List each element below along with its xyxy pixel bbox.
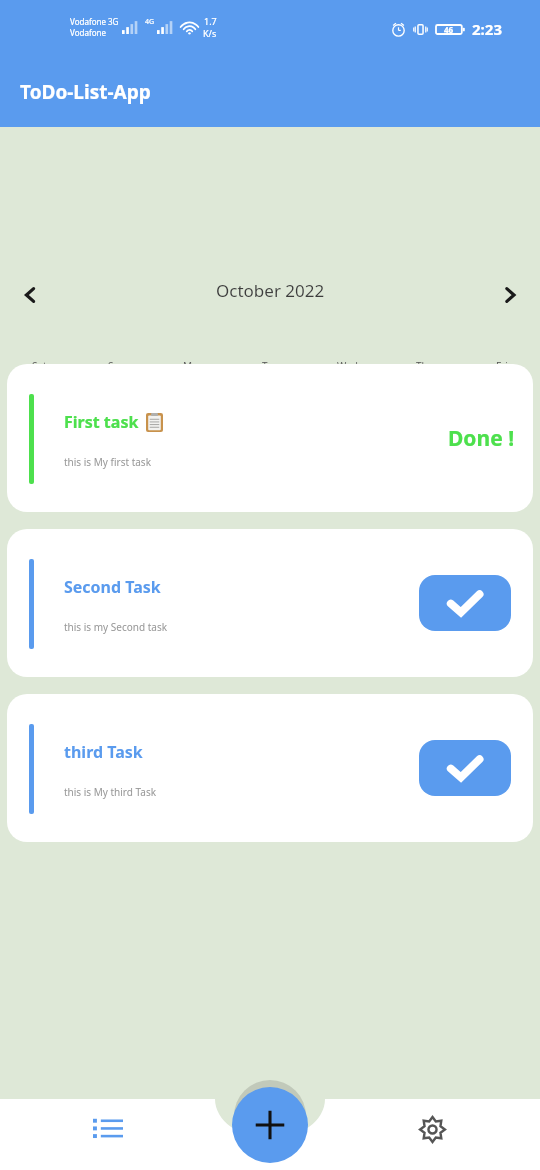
staticText: Tue xyxy=(262,359,279,373)
button[interactable]: Mark task done xyxy=(419,575,511,631)
button[interactable]: 30 xyxy=(78,409,155,481)
button[interactable]: Mark task done xyxy=(419,740,511,796)
button[interactable]: 31 xyxy=(155,409,232,481)
staticText: this is My first task xyxy=(64,455,151,469)
staticText: 2:23 xyxy=(472,19,502,39)
staticText: Done ! xyxy=(448,424,515,453)
button[interactable]: 4 xyxy=(463,409,540,481)
staticText: Thu xyxy=(416,359,434,373)
staticText: Vodafone xyxy=(70,27,106,38)
staticText: Second Task xyxy=(64,576,161,598)
staticText: Fri xyxy=(496,359,508,373)
staticText: 29 xyxy=(31,436,48,455)
staticText: third Task xyxy=(64,741,143,763)
button[interactable]: 29 xyxy=(0,409,78,481)
button[interactable]: Second Task xyxy=(7,529,533,677)
button[interactable]: First task xyxy=(7,364,533,512)
button[interactable]: 3 xyxy=(386,409,463,481)
button[interactable]: Next month xyxy=(490,275,530,315)
staticText: this is my Second task xyxy=(64,620,168,634)
button[interactable]: Settings xyxy=(325,1099,540,1159)
staticText: October 2022 xyxy=(216,279,325,302)
staticText: K/s xyxy=(203,27,217,39)
button[interactable]: Previous month xyxy=(10,275,50,315)
staticText: 46 xyxy=(444,24,454,35)
staticText: Sun xyxy=(108,359,126,373)
button[interactable]: third Task xyxy=(7,694,533,842)
staticText: Mon xyxy=(183,359,205,373)
button[interactable]: Tasks list xyxy=(0,1099,215,1159)
staticText: 4 xyxy=(497,436,506,455)
staticText: Sat xyxy=(32,359,47,373)
staticText: this is My third Task xyxy=(64,785,157,799)
staticText: ToDo-List-App xyxy=(20,79,151,105)
staticText: 4G xyxy=(145,17,155,27)
staticText: 1.7 xyxy=(204,15,217,27)
staticText: First task xyxy=(64,411,139,433)
staticText: Vodafone 3G xyxy=(70,16,119,27)
button[interactable]: Add task xyxy=(232,1087,308,1163)
staticText: Wed xyxy=(337,359,358,373)
